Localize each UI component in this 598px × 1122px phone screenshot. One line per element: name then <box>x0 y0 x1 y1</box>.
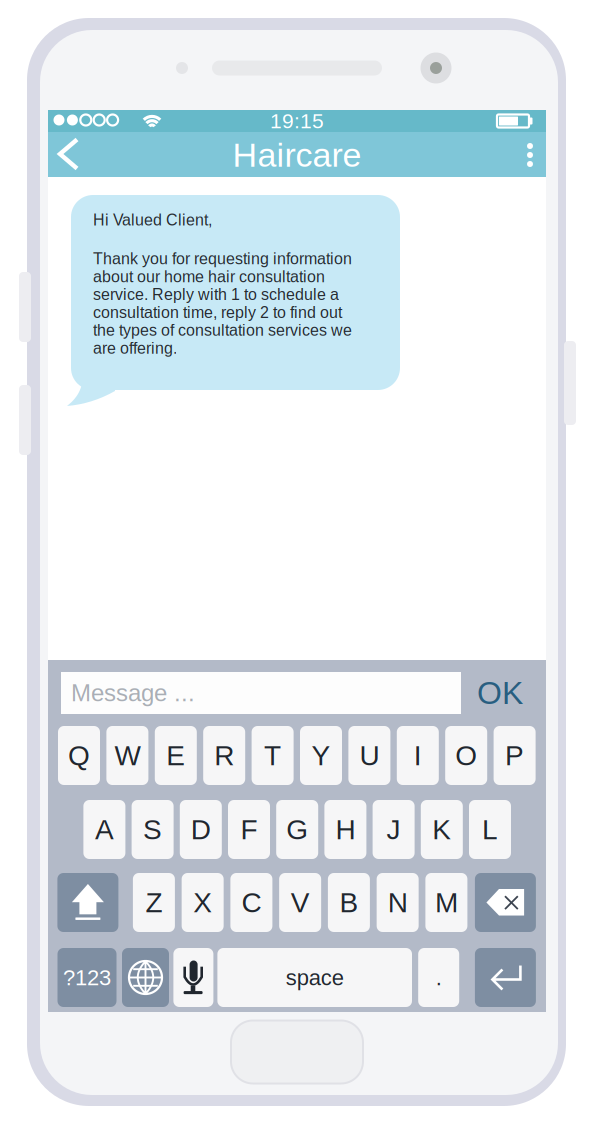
button[interactable]: Q <box>58 726 100 785</box>
staticText: ?123 <box>63 965 111 990</box>
button[interactable]: L <box>469 800 511 859</box>
staticText: L <box>482 814 498 845</box>
staticText: N <box>388 887 408 918</box>
button[interactable] <box>173 948 213 1007</box>
staticText: E <box>166 740 185 771</box>
staticText: J <box>387 814 401 845</box>
button[interactable]: space <box>217 948 412 1007</box>
staticText: U <box>359 740 379 771</box>
button[interactable] <box>475 873 536 932</box>
staticText: space <box>286 965 344 990</box>
staticText: Message ... <box>71 680 195 706</box>
staticText: G <box>286 814 308 845</box>
button[interactable] <box>57 873 118 932</box>
button[interactable]: H <box>324 800 366 859</box>
staticText: O <box>455 740 477 771</box>
button[interactable]: OK <box>465 672 535 714</box>
staticText: V <box>291 887 310 918</box>
staticText: Z <box>145 887 162 918</box>
staticText: A <box>95 814 114 845</box>
staticText: T <box>264 740 281 771</box>
button[interactable]: J <box>373 800 415 859</box>
button[interactable]: M <box>425 873 467 932</box>
staticText: Thank you for requesting information abo… <box>93 250 352 357</box>
button[interactable]: T <box>252 726 294 785</box>
staticText: Q <box>68 740 90 771</box>
button[interactable]: G <box>276 800 318 859</box>
staticText: OK <box>477 675 523 711</box>
staticText: S <box>143 814 162 845</box>
button[interactable]: Z <box>133 873 175 932</box>
staticText: M <box>435 887 458 918</box>
button[interactable]: K <box>421 800 463 859</box>
button[interactable]: I <box>397 726 439 785</box>
button[interactable]: W <box>106 726 148 785</box>
button[interactable]: Message ... <box>61 672 461 714</box>
staticText: Y <box>311 740 330 771</box>
staticText: D <box>191 814 211 845</box>
staticText: R <box>214 740 234 771</box>
button[interactable]: B <box>328 873 370 932</box>
button[interactable]: P <box>494 726 536 785</box>
button[interactable]: Y <box>300 726 342 785</box>
button[interactable]: U <box>348 726 390 785</box>
button[interactable]: ?123 <box>57 948 116 1007</box>
button[interactable]: R <box>203 726 245 785</box>
staticText: W <box>114 740 140 771</box>
staticText: K <box>432 814 451 845</box>
staticText: . <box>436 965 442 990</box>
button[interactable]: V <box>279 873 321 932</box>
button[interactable]: A <box>83 800 125 859</box>
staticText: C <box>241 887 261 918</box>
button[interactable]: X <box>182 873 224 932</box>
button[interactable]: N <box>377 873 419 932</box>
button[interactable] <box>475 948 536 1007</box>
staticText: Haircare <box>232 136 361 174</box>
staticText: I <box>414 740 422 771</box>
staticText: Hi Valued Client, <box>93 211 212 229</box>
staticText: B <box>339 887 358 918</box>
button[interactable]: E <box>155 726 197 785</box>
button[interactable]: . <box>418 948 459 1007</box>
button[interactable] <box>122 948 169 1007</box>
button[interactable]: Back <box>56 134 96 174</box>
button[interactable]: S <box>132 800 174 859</box>
button[interactable]: C <box>230 873 272 932</box>
staticText: F <box>240 814 257 845</box>
staticText: 19:15 <box>270 109 324 133</box>
button[interactable]: F <box>228 800 270 859</box>
staticText: H <box>335 814 355 845</box>
button[interactable]: D <box>180 800 222 859</box>
staticText: P <box>505 740 524 771</box>
staticText: X <box>193 887 212 918</box>
button[interactable]: O <box>445 726 487 785</box>
button[interactable]: More options <box>510 133 550 177</box>
